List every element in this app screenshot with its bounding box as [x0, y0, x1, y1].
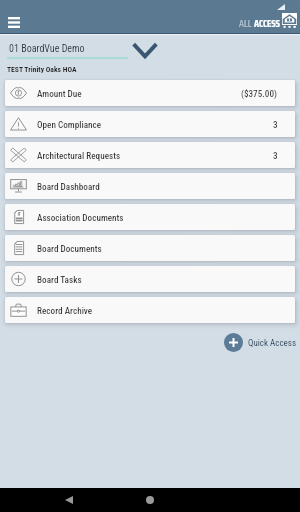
button[interactable]: Menu [4, 13, 23, 32]
button[interactable]: Back [59, 490, 79, 510]
staticText: ($375.00) [241, 88, 278, 99]
staticText: Open Compliance [37, 119, 102, 130]
staticText: Board Dashboard [37, 181, 100, 192]
staticText: Quick Access [248, 338, 297, 349]
staticText: 3 [273, 119, 278, 130]
button[interactable]: Quick Access [224, 333, 297, 352]
button[interactable]: Board Dashboard [5, 173, 295, 199]
button[interactable]: Home [140, 490, 160, 510]
button[interactable]: Board Documents [5, 235, 295, 261]
button[interactable]: Board Tasks [5, 266, 295, 292]
button[interactable]: Open Compliance [5, 111, 295, 137]
staticText: ALL [239, 16, 252, 32]
staticText: Record Archive [37, 305, 93, 316]
staticText: 3 [273, 150, 278, 161]
button[interactable]: Choose association [128, 38, 162, 62]
staticText: Board Documents [37, 243, 102, 254]
button[interactable]: Record Archive [5, 297, 295, 323]
button[interactable]: Architectural Requests [5, 142, 295, 168]
staticText: Board Tasks [37, 274, 82, 285]
staticText: Architectural Requests [37, 150, 121, 161]
staticText: Amount Due [37, 88, 82, 99]
staticText: 01 BoardVue Demo [9, 43, 85, 55]
button[interactable]: Amount Due [5, 80, 295, 106]
staticText: TEST Trinity Oaks HOA [7, 65, 77, 74]
staticText: Association Documents [37, 212, 124, 223]
staticText: ACCESS [254, 16, 280, 32]
button[interactable]: Association Documents [5, 204, 295, 230]
